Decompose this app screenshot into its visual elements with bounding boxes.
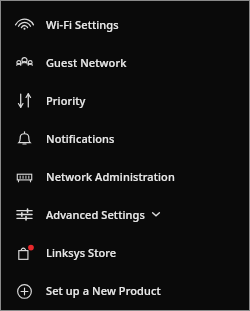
staticText: Wi-Fi Settings bbox=[46, 17, 119, 32]
button[interactable]: Network Administration bbox=[1, 157, 249, 195]
button[interactable]: Set up a New Product bbox=[1, 271, 249, 309]
staticText: Linksys Store bbox=[46, 245, 117, 260]
button[interactable]: Linksys Store bbox=[1, 233, 249, 271]
staticText: Advanced Settings bbox=[46, 207, 145, 222]
button[interactable]: Advanced Settings bbox=[1, 195, 249, 233]
staticText: Priority bbox=[46, 93, 86, 108]
button[interactable]: Notifications bbox=[1, 119, 249, 157]
staticText: Notifications bbox=[46, 131, 115, 146]
staticText: Network Administration bbox=[46, 169, 175, 184]
button[interactable]: Priority bbox=[1, 81, 249, 119]
staticText: Set up a New Product bbox=[46, 283, 161, 298]
staticText: Guest Network bbox=[46, 55, 127, 70]
button[interactable]: Wi-Fi Settings bbox=[1, 5, 249, 43]
button[interactable]: Guest Network bbox=[1, 43, 249, 81]
